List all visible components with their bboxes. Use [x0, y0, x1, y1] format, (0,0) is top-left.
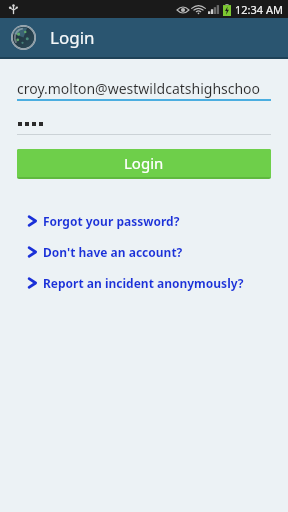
- other: App logo: [11, 25, 36, 50]
- button[interactable]: [17, 114, 271, 134]
- staticText: Login: [50, 26, 95, 49]
- staticText: Forgot your password?: [43, 213, 180, 229]
- button[interactable]: Don't have an account?: [17, 241, 271, 263]
- button[interactable]: croy.molton@westwildcatshighschoo: [17, 77, 271, 99]
- staticText: croy.molton@westwildcatshighschoo: [17, 79, 261, 98]
- staticText: Report an incident anonymously?: [43, 275, 244, 291]
- button[interactable]: Report an incident anonymously?: [17, 272, 271, 294]
- staticText: 12:34 AM: [235, 2, 283, 17]
- button[interactable]: Login: [17, 149, 271, 177]
- staticText: Login: [124, 153, 164, 173]
- staticText: Don't have an account?: [43, 244, 183, 260]
- button[interactable]: Forgot your password?: [17, 210, 271, 232]
